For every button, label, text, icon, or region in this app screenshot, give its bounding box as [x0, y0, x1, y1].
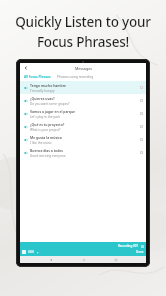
staticText: Do you want some grapes?: [30, 102, 70, 106]
staticText: Buenos días a todos: [30, 148, 64, 153]
staticText: Messages: [75, 66, 92, 71]
button[interactable]: Back: [22, 64, 30, 72]
button[interactable]: Play phrase: [20, 133, 146, 146]
staticText: Me gusta la música: [30, 135, 62, 140]
staticText: I like the music: [30, 141, 52, 145]
button[interactable]: Play phrase: [23, 137, 28, 142]
staticText: Quickly Listen to your: [0, 13, 166, 31]
button[interactable]: Select: [140, 112, 143, 115]
button[interactable]: Play phrase: [23, 85, 28, 90]
staticText: Recording 001: [118, 244, 139, 248]
button[interactable]: Done: [136, 250, 144, 254]
staticText: I'm really hungry: [30, 89, 55, 93]
staticText: Phrases using recording: [57, 75, 94, 79]
button[interactable]: Home: [81, 257, 86, 262]
button[interactable]: Play phrase: [20, 120, 146, 133]
button[interactable]: Play phrase: [20, 94, 146, 107]
button[interactable]: Play phrase: [23, 98, 28, 103]
button[interactable]: All Focus Phrases: [23, 74, 52, 80]
button[interactable]: Play phrase: [23, 124, 28, 129]
button[interactable]: Play phrase: [20, 81, 146, 94]
staticText: Let's play in the park: [30, 115, 60, 119]
staticText: Good morning everyone: [30, 154, 66, 158]
button[interactable]: Phrases using recording: [56, 74, 95, 80]
button[interactable]: More options: [141, 245, 144, 248]
staticText: Vamos a jugar en el parque: [30, 109, 76, 114]
button[interactable]: Select: [140, 125, 143, 128]
button[interactable]: Recents: [113, 257, 118, 262]
button[interactable]: Select: [140, 99, 143, 102]
button[interactable]: Select: [140, 151, 143, 154]
staticText: ¿Qué es tu proyecto?: [30, 122, 65, 127]
staticText: Tengo mucho hambre: [30, 83, 67, 88]
staticText: 0:00: [28, 250, 34, 254]
button[interactable]: Play phrase: [23, 111, 28, 116]
button[interactable]: Play phrase: [20, 146, 146, 159]
button[interactable]: Record: [22, 250, 26, 254]
staticText: What is your project?: [30, 128, 61, 132]
button[interactable]: Select: [140, 86, 143, 89]
staticText: Focus Phrases!: [0, 33, 166, 51]
button[interactable]: Flag: [36, 251, 39, 254]
button[interactable]: Play phrase: [20, 107, 146, 120]
button[interactable]: Play phrase: [23, 150, 28, 155]
staticText: All Focus Phrases: [24, 75, 51, 79]
staticText: ¿Quieres uvas?: [30, 96, 55, 101]
button[interactable]: Select: [140, 138, 143, 141]
button[interactable]: Back: [48, 257, 53, 262]
